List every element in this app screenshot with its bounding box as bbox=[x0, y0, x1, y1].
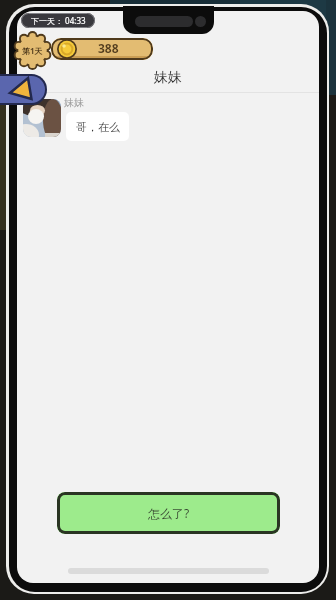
staticText: 怎么了? bbox=[148, 505, 190, 521]
staticText: 哥，在么 bbox=[76, 120, 120, 134]
staticText: 妹妹 bbox=[64, 96, 84, 109]
staticText: 388 bbox=[98, 40, 119, 56]
staticText: 第1天 bbox=[22, 45, 43, 56]
button[interactable]: 哥，在么 bbox=[66, 112, 129, 141]
button[interactable]: 下一天： 04:33 bbox=[21, 13, 95, 28]
button[interactable]: 怎么了? bbox=[57, 492, 280, 534]
button[interactable] bbox=[23, 99, 61, 137]
staticText: 下一天： 04:33 bbox=[31, 15, 86, 26]
button[interactable]: 第1天 bbox=[11, 29, 54, 72]
button[interactable]: 388 bbox=[51, 38, 153, 60]
staticText: 妹妹 bbox=[154, 69, 182, 87]
button[interactable] bbox=[0, 74, 47, 105]
